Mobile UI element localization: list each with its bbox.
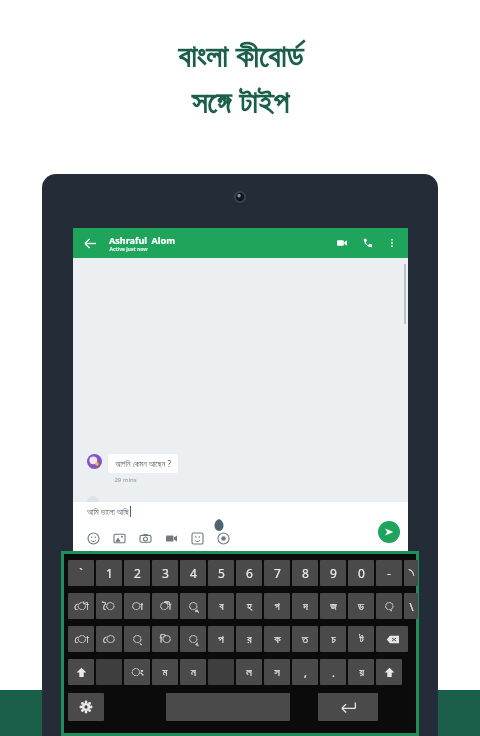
staticText: . [332,665,335,680]
button[interactable]: . [320,659,346,685]
staticText: ং [131,667,144,678]
button[interactable]: গ [264,593,290,619]
button[interactable]: হ [236,593,262,619]
staticText: ৌ [74,601,89,612]
staticText: 2 [134,565,141,581]
staticText: ে [103,634,115,645]
button[interactable] [376,659,402,685]
button[interactable]: ু [180,593,206,619]
staticText: 3 [162,565,169,581]
button[interactable]: 4 [180,560,206,586]
staticText: ় [385,601,394,612]
button[interactable]: ম [152,659,178,685]
button[interactable]: ্ [124,626,150,652]
staticText: প [218,634,224,645]
button[interactable] [68,659,94,685]
button[interactable]: জ [320,593,346,619]
staticText: ` [79,565,83,581]
button[interactable]: Camera [136,529,154,547]
staticText: ু [189,601,198,612]
staticText: বাংলা কীবোর্ড [178,34,303,76]
staticText: ো [74,634,89,645]
button[interactable]: Voice call [360,235,376,251]
button[interactable]: 1 [96,560,122,586]
button[interactable]: Location [214,529,232,547]
button[interactable]: Gallery [110,529,128,547]
button[interactable]: Video [162,529,180,547]
button[interactable] [376,626,408,652]
staticText: Ashraful Alom [109,234,175,246]
staticText: স [274,667,280,678]
staticText: ৈ [103,601,115,612]
button[interactable]: Enter [318,693,378,721]
button[interactable]: ত [292,626,318,652]
button[interactable]: ী [152,593,178,619]
button[interactable]: 9 [320,560,346,586]
staticText: 0 [358,565,365,581]
staticText: ড [358,601,364,612]
button[interactable]: ড [348,593,374,619]
staticText: জ [330,601,337,612]
staticText: ্ [133,634,142,645]
staticText: ি [160,634,171,645]
staticText: ৃ [189,634,198,645]
button[interactable]: ি [152,626,178,652]
button[interactable]: 7 [264,560,290,586]
button[interactable]: Emoji [84,529,102,547]
button[interactable]: া [124,593,150,619]
button[interactable]: Keyboard settings [68,693,104,721]
staticText: 8 [302,565,309,581]
staticText: য় [359,667,364,678]
staticText: গ [274,601,280,612]
staticText: \ [409,599,414,614]
button[interactable]: ে [96,626,122,652]
button[interactable]: ৃ [180,626,206,652]
staticText: 9 [330,565,337,581]
button[interactable]: ৈ [96,593,122,619]
staticText: আপনি কেমন আছেন ? [115,458,171,469]
button[interactable]: Send [378,521,400,543]
staticText: 7 [274,565,281,581]
button[interactable]: 5 [208,560,234,586]
button[interactable]: ল [236,659,262,685]
button[interactable]: \ [404,593,418,619]
button[interactable]: আপনি কেমন আছেন ? [108,454,178,473]
button[interactable]: 2 [124,560,150,586]
button[interactable]: 0 [348,560,374,586]
button[interactable]: 3 [152,560,178,586]
button[interactable]: ় [376,593,402,619]
button[interactable]: More options [384,235,400,251]
button[interactable]: ট [348,626,374,652]
button[interactable]: ো [68,626,94,652]
button[interactable]: ৌ [68,593,94,619]
button[interactable]: স [264,659,290,685]
button[interactable]: , [292,659,318,685]
staticText: 5 [218,565,225,581]
button[interactable]: প [208,626,234,652]
staticText: 1 [106,565,113,581]
button[interactable]: চ [320,626,346,652]
button[interactable]: 6 [236,560,262,586]
staticText: 4 [190,565,197,581]
button[interactable]: Back [73,228,408,258]
button[interactable]: - [376,560,402,586]
button[interactable]: ন [180,659,206,685]
button[interactable]: য় [348,659,374,685]
button[interactable]: Sticker [188,529,206,547]
button[interactable]: ` [68,560,94,586]
button[interactable]: ক [264,626,290,652]
button[interactable]: দ [292,593,318,619]
button[interactable]: র [236,626,262,652]
button[interactable]: ং [124,659,150,685]
staticText: 6 [246,565,253,581]
button[interactable]: 8 [292,560,318,586]
button[interactable]: Video call [334,235,350,251]
staticText: ল [246,667,252,678]
button[interactable]: ৲ [404,560,418,586]
button[interactable]: Back [81,234,99,252]
staticText: ক [274,634,281,645]
button[interactable]: ব [208,593,234,619]
